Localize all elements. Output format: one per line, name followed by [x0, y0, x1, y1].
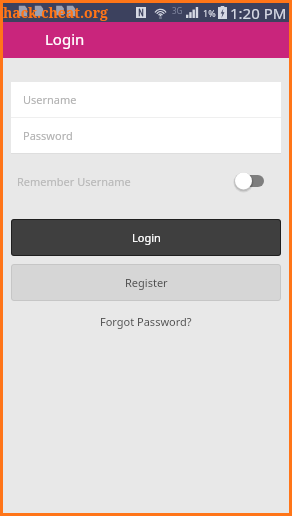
staticText: Register [125, 275, 168, 290]
staticText: Remember Username [17, 174, 131, 189]
staticText: 1% [203, 7, 216, 19]
staticText: 1:20 PM [230, 3, 287, 22]
staticText: 3G [172, 5, 183, 16]
button[interactable]: Login [11, 219, 281, 256]
button[interactable]: Password [11, 118, 281, 153]
button[interactable]: Forgot Password? [11, 309, 281, 333]
button[interactable]: Remember Username [17, 170, 282, 192]
staticText: hack.cheat.org [3, 3, 108, 22]
staticText: Login [132, 230, 161, 245]
staticText: Forgot Password? [100, 314, 192, 329]
staticText: Username [23, 92, 77, 107]
button[interactable]: Register [11, 264, 281, 301]
button[interactable]: Username [11, 82, 281, 117]
staticText: Login [45, 29, 85, 49]
other: Remember Username toggle [234, 171, 282, 191]
staticText: Password [23, 128, 73, 143]
